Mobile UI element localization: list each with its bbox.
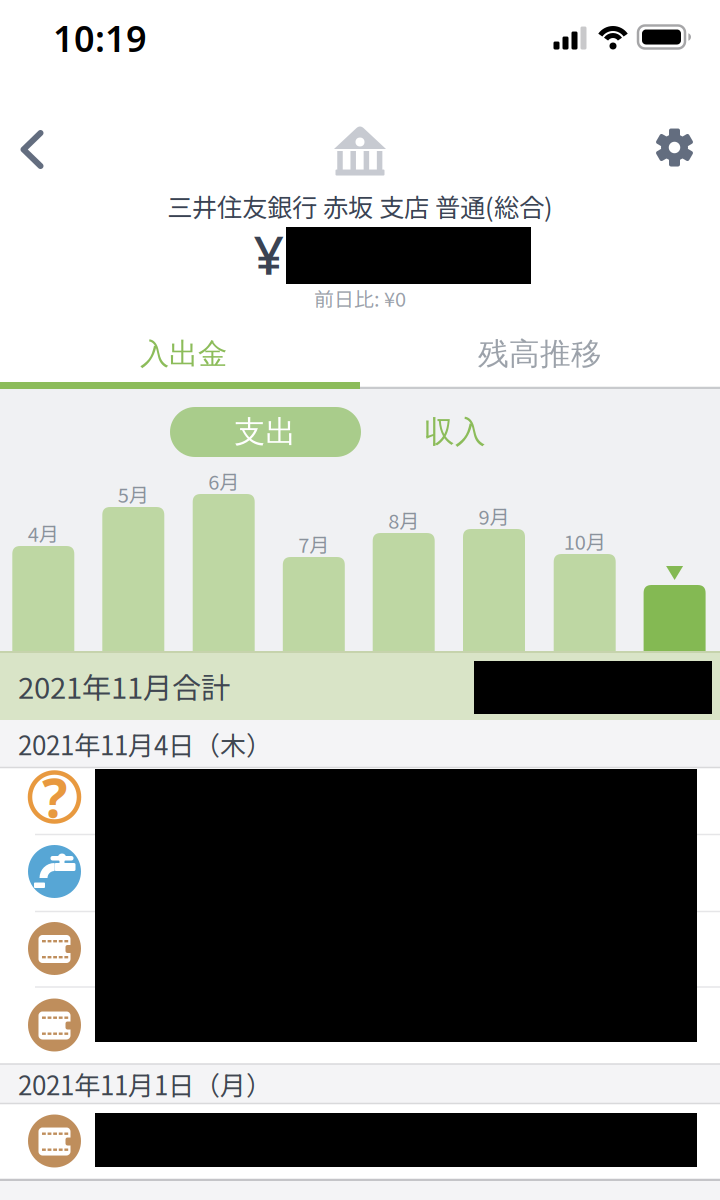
button[interactable]: 支出 <box>170 407 361 457</box>
staticText: 支出 <box>234 413 296 451</box>
button[interactable]: 水道料金 <box>0 834 720 911</box>
staticText: 9月 <box>478 501 509 530</box>
staticText: 収入 <box>424 413 486 451</box>
staticText: 2021年11月合計 <box>18 665 230 707</box>
button[interactable]: Back <box>11 121 52 178</box>
staticText: 残高推移 <box>478 335 602 373</box>
staticText: 5月 <box>118 479 149 508</box>
staticText: 2021年11月4日（木） <box>18 725 272 763</box>
staticText: ? <box>42 762 67 832</box>
staticText: 6月 <box>208 466 239 495</box>
button[interactable]: 残高推移 <box>360 326 720 382</box>
staticText: 10:19 <box>53 14 147 62</box>
staticText: 2021年11月1日（月） <box>18 1065 272 1103</box>
button[interactable]: 不明な取引 <box>0 768 720 834</box>
button[interactable]: 取引明細 <box>0 911 720 987</box>
button[interactable]: Settings <box>645 118 703 176</box>
staticText: 三井住友銀行 赤坂 支店 普通(総合) <box>167 188 553 224</box>
staticText: 4月 <box>28 518 59 547</box>
button[interactable]: 取引明細 <box>0 1104 720 1179</box>
staticText: 前日比: ¥0 <box>314 283 406 312</box>
button[interactable]: 入出金 <box>3 326 363 382</box>
staticText: 入出金 <box>140 335 227 372</box>
button[interactable]: 取引明細 <box>0 987 720 1063</box>
staticText: 7月 <box>298 529 329 558</box>
staticText: 8月 <box>388 505 419 534</box>
button[interactable]: 収入 <box>395 407 515 457</box>
staticText: 10月 <box>564 526 606 555</box>
staticText: ¥ <box>253 219 284 289</box>
